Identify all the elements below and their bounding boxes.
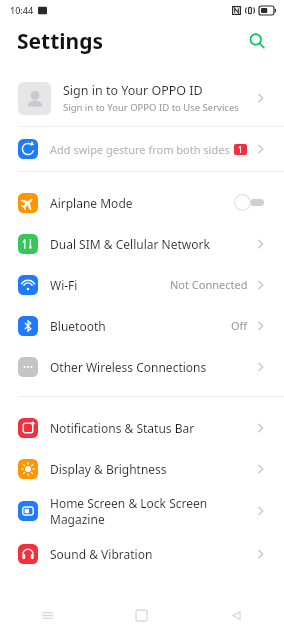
staticText: Add swipe gesture from both sides <box>50 142 234 157</box>
staticText: Dual SIM & Cellular Network <box>50 236 249 252</box>
staticText: 10:44 <box>10 4 34 16</box>
staticText: Settings <box>17 27 104 56</box>
staticText: Wi-Fi <box>50 277 164 293</box>
staticText: Airplane Mode <box>50 195 227 211</box>
staticText: Sound & Vibration <box>50 546 249 562</box>
button[interactable]: Bluetooth <box>0 305 284 346</box>
button[interactable]: Wi-Fi <box>0 264 284 305</box>
button[interactable]: Display & Brightness <box>0 448 284 489</box>
button[interactable]: Add swipe gesture from both sides <box>0 127 284 171</box>
button[interactable]: Recent apps <box>0 600 94 630</box>
button[interactable]: Airplane Mode toggle <box>233 194 266 211</box>
staticText: Off <box>231 318 248 333</box>
staticText: Notifications & Status Bar <box>50 420 249 436</box>
staticText: Home Screen & Lock Screen Magazine <box>50 495 249 527</box>
button[interactable]: Home <box>94 600 189 630</box>
button[interactable]: Dual SIM & Cellular Network <box>0 223 284 264</box>
button[interactable]: Home Screen & Lock Screen Magazine <box>0 489 284 533</box>
staticText: Not Connected <box>170 277 248 292</box>
button[interactable]: Back <box>189 600 284 630</box>
staticText: Bluetooth <box>50 318 225 334</box>
staticText: Sign in to Your OPPO ID <box>63 82 203 99</box>
staticText: Sign in to Your OPPO ID to Use Services <box>63 101 239 114</box>
button[interactable]: Other Wireless Connections <box>0 346 284 387</box>
staticText: 1 <box>238 144 243 155</box>
button[interactable]: Notifications & Status Bar <box>0 407 284 448</box>
button[interactable]: Sign in to Your OPPO ID <box>0 70 284 126</box>
button[interactable]: Sound & Vibration <box>0 533 284 574</box>
staticText: Other Wireless Connections <box>50 359 249 375</box>
button[interactable]: Search <box>242 26 272 56</box>
staticText: Display & Brightness <box>50 461 249 477</box>
button[interactable]: Airplane Mode <box>0 182 284 223</box>
